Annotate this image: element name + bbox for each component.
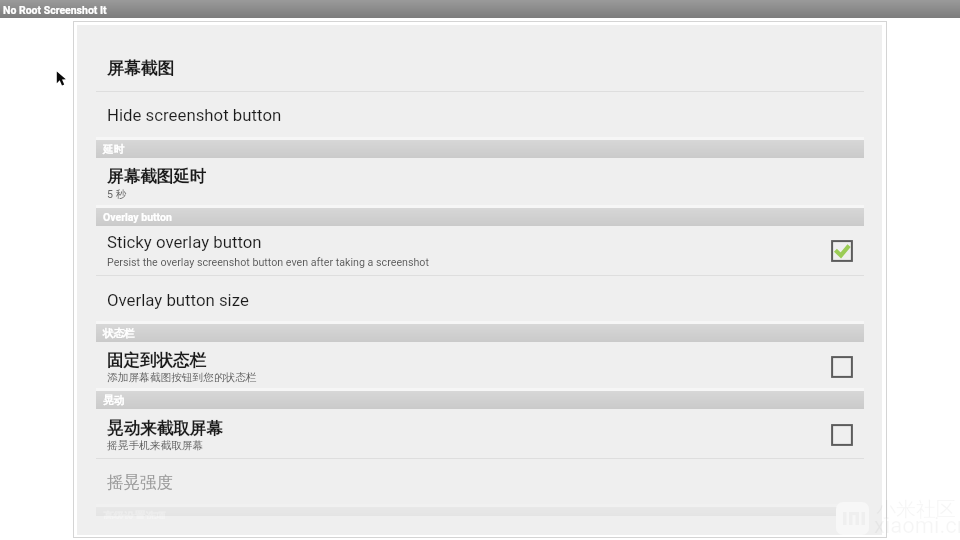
staticText: Hide screenshot button [107,105,282,125]
button[interactable]: Unchecked [826,351,858,383]
button[interactable] [77,276,882,324]
button[interactable] [77,158,882,208]
staticText: 小米社区 [876,497,956,522]
staticText: 5 秒 [107,188,127,201]
button[interactable] [77,226,882,275]
staticText: No Root Screenshot It [3,4,107,16]
staticText: 添加屏幕截图按钮到您的状态栏 [107,371,257,384]
staticText: 屏幕截图 [107,58,175,79]
staticText: 固定到状态栏 [107,350,206,371]
staticText: 高级设置选项 [103,510,166,519]
button[interactable]: 延时 [96,140,864,158]
staticText: Overlay button [103,211,172,223]
staticText: 屏幕截图延时 [107,166,206,187]
button[interactable]: Checked [826,235,858,267]
button[interactable]: Unchecked [826,419,858,451]
button[interactable] [77,409,882,458]
button[interactable]: Overlay button [96,208,864,226]
staticText: Sticky overlay button [107,232,262,252]
staticText: 摇晃手机来截取屏幕 [107,439,204,452]
button[interactable]: 状态栏 [96,324,864,342]
staticText: 晃动 [103,394,124,407]
button[interactable] [77,459,882,507]
button[interactable] [77,92,882,140]
staticText: 延时 [103,143,124,156]
staticText: 摇晃强度 [107,472,173,493]
staticText: 状态栏 [103,327,135,340]
button[interactable] [77,26,882,91]
button[interactable] [77,342,882,391]
button[interactable]: 高级设置选项 [96,507,864,516]
staticText: Persist the overlay screenshot button ev… [107,256,429,269]
staticText: xiaomi.cn [874,513,960,539]
staticText: 晃动来截取屏幕 [107,418,223,439]
button[interactable]: 晃动 [96,391,864,409]
staticText: Overlay button size [107,290,249,310]
